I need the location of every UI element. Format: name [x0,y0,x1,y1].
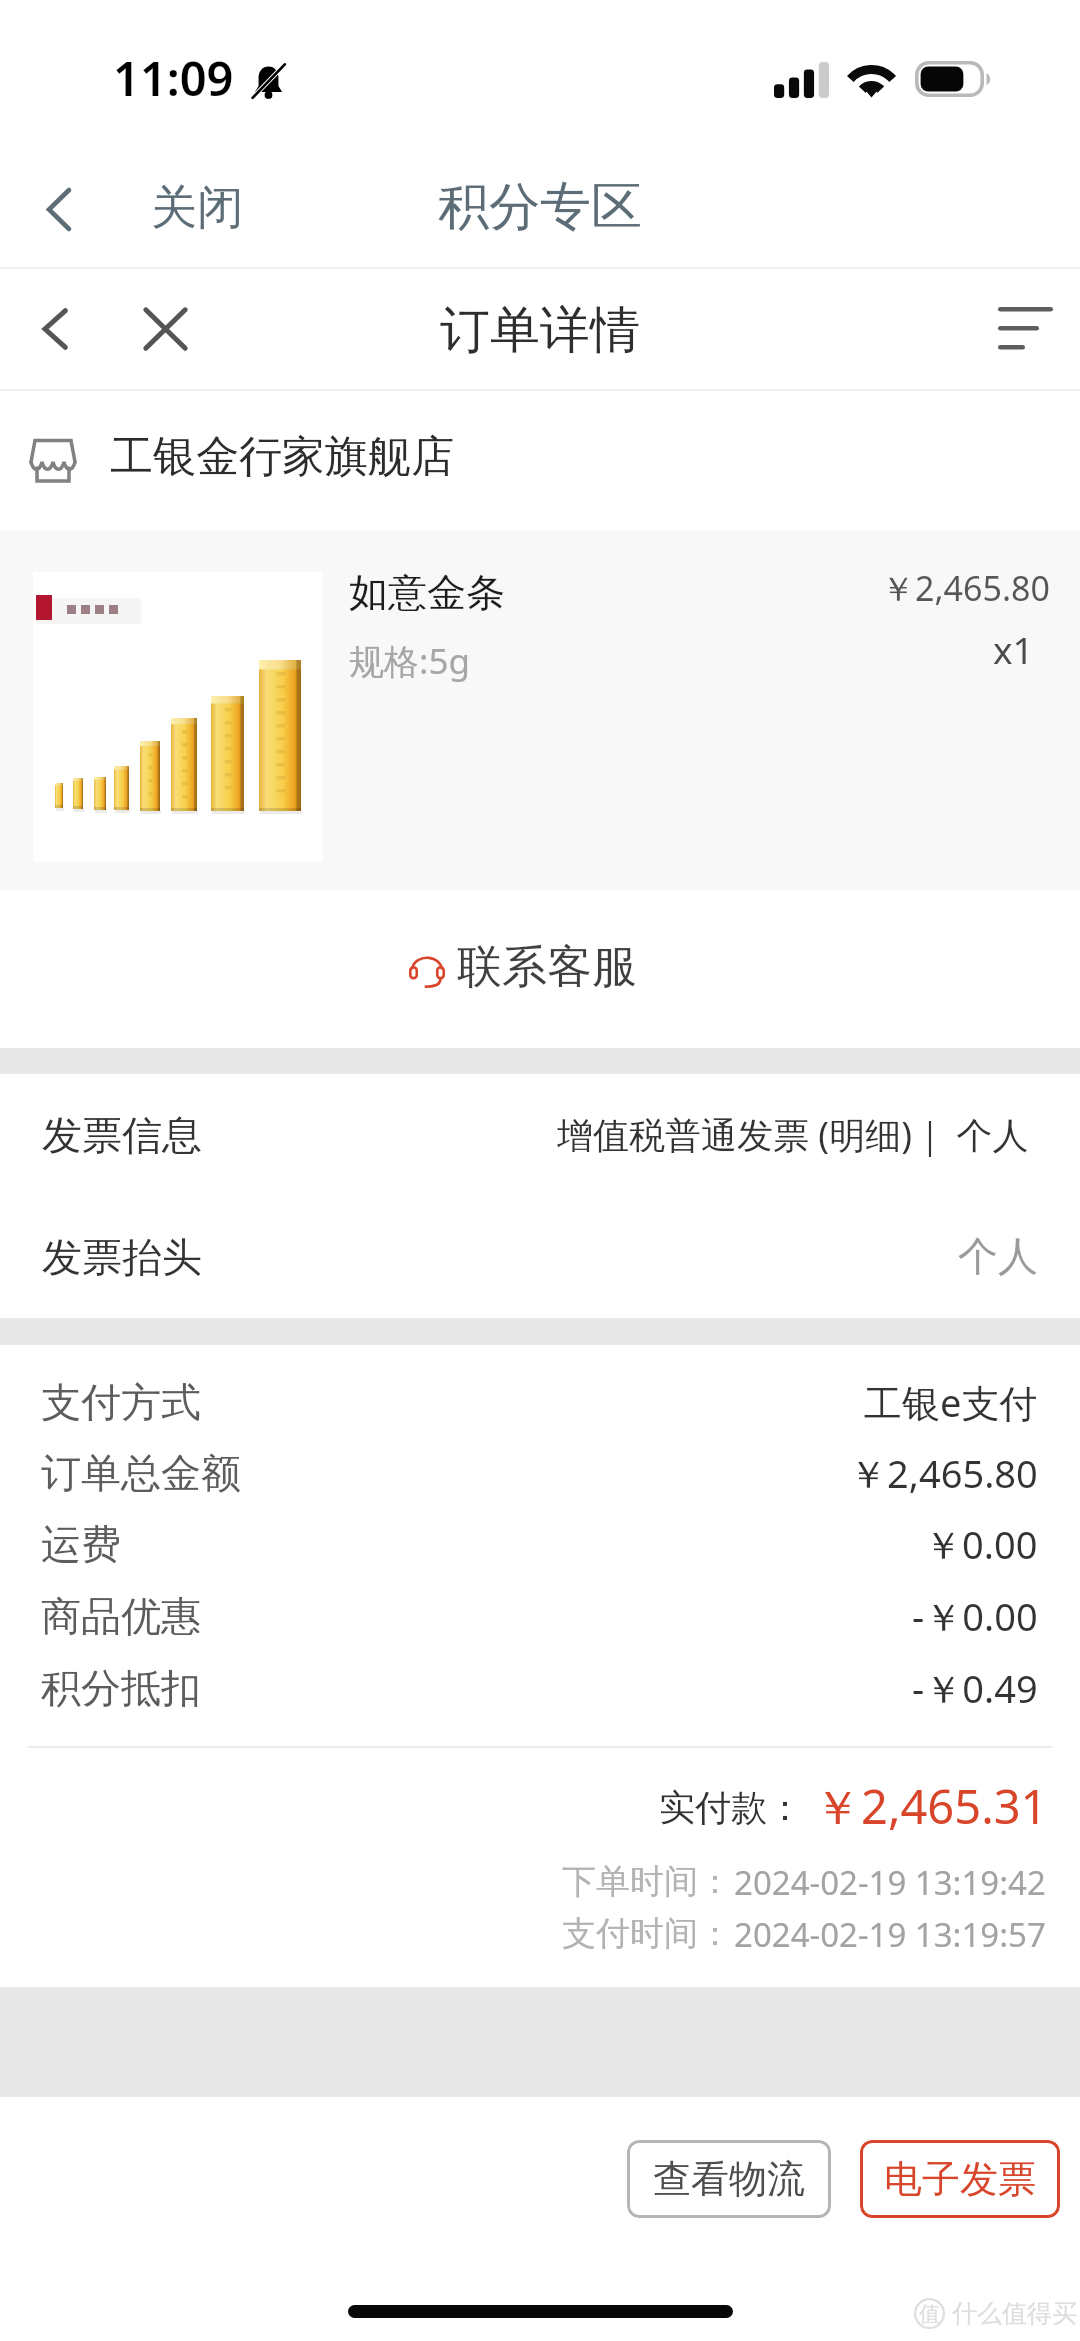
staticText: x1 [993,624,1034,674]
button[interactable]: 发票信息 [0,1074,1080,1196]
staticText: 订单总金额 [41,1448,241,1498]
staticText: 个人 [958,1231,1038,1281]
button[interactable]: 工银金行家旗舰店 [0,390,1080,531]
staticText: 订单详情 [440,299,640,362]
staticText: 查看物流 [653,2155,805,2203]
staticText: 如意金条 [349,568,505,617]
staticText: 关闭 [151,179,243,237]
staticText: 工银e支付 [864,1376,1038,1428]
staticText: ￥0.00 [924,1518,1038,1570]
staticText: ￥2,465.31 [814,1774,1048,1838]
button[interactable]: Menu [984,287,1068,371]
staticText: 什么值得买 [952,2298,1077,2329]
button[interactable]: 如意金条 [0,531,1080,890]
staticText: 2024-02-19 13:19:57 [734,1912,1046,1957]
staticText: ￥2,465.80 [881,565,1050,611]
staticText: 工银金行家旗舰店 [110,430,454,484]
button[interactable]: 关闭 [0,166,269,252]
staticText: 实付款： [659,1785,803,1830]
staticText: 下单时间： [562,1860,732,1903]
staticText: -￥0.49 [912,1662,1038,1714]
staticText: 支付方式 [41,1377,201,1427]
button[interactable]: Back [17,291,93,367]
staticText: 11:09 [113,46,234,110]
staticText: -￥0.00 [912,1590,1038,1642]
staticText: 发票信息 [42,1110,202,1160]
button[interactable]: 查看物流 [627,2140,831,2218]
staticText: ￥2,465.80 [849,1447,1038,1499]
button[interactable]: Close [127,291,203,367]
staticText: 发票抬头 [42,1232,202,1282]
staticText: 商品优惠 [41,1591,201,1641]
staticText: 规格:5g [349,637,470,685]
button[interactable]: 发票抬头 [0,1196,1080,1318]
staticText: 积分专区 [438,175,642,239]
staticText: 电子发票 [884,2155,1036,2203]
staticText: 运费 [41,1519,121,1569]
staticText: 值 [919,2301,940,2327]
staticText: 2024-02-19 13:19:42 [734,1860,1046,1905]
staticText: 支付时间： [562,1912,732,1955]
staticText: 增值税普通发票 (明细)｜ 个人 [557,1110,1029,1159]
staticText: 积分抵扣 [41,1663,201,1713]
button[interactable]: 联系客服 [378,925,667,1014]
staticText: 联系客服 [457,939,637,996]
button[interactable]: 电子发票 [860,2140,1060,2218]
